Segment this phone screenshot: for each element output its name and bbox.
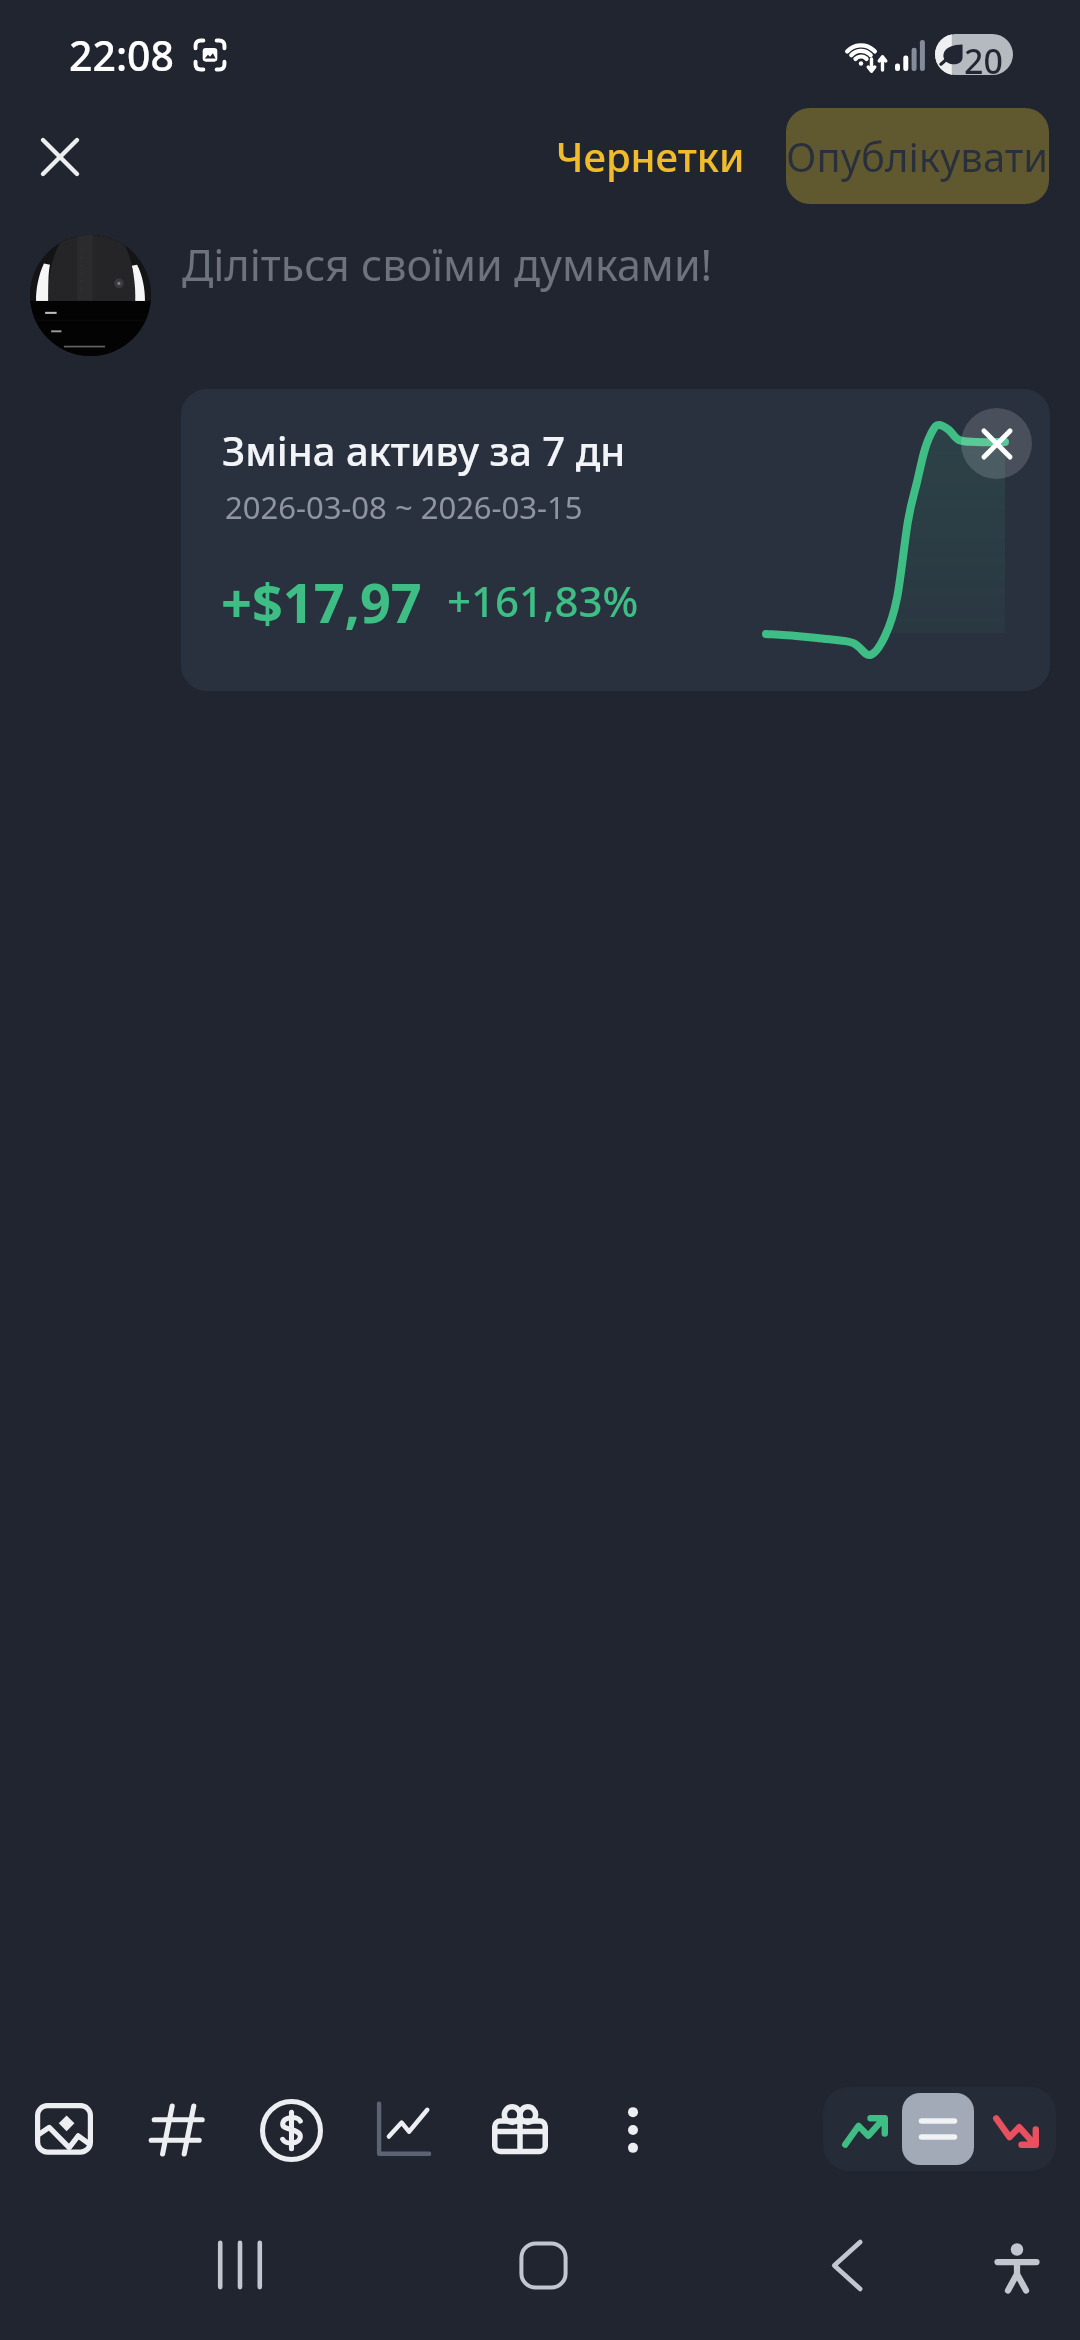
staticText: 2026-03-08 ~ 2026-03-15	[225, 486, 583, 528]
button[interactable]: Add image	[20, 2086, 108, 2174]
button[interactable]: Чернетки	[540, 115, 761, 197]
button[interactable]: Add chart	[359, 2086, 447, 2174]
button[interactable]: Home	[493, 2215, 593, 2315]
button[interactable]: Bullish	[829, 2095, 901, 2167]
button[interactable]: Neutral	[902, 2093, 974, 2165]
button[interactable]: Зміна активу за 7 дн	[181, 389, 1050, 691]
button[interactable]: Accessibility	[967, 2218, 1067, 2318]
button[interactable]: Profile picture	[30, 235, 151, 356]
button[interactable]: Recents	[190, 2215, 290, 2315]
button[interactable]: Send gift	[476, 2086, 564, 2174]
button[interactable]: Опублікувати	[786, 108, 1049, 204]
button[interactable]: Add hashtag	[133, 2086, 221, 2174]
button[interactable]: Back	[796, 2215, 896, 2315]
button[interactable]: Remove attachment	[961, 408, 1032, 479]
button[interactable]: Add ticker	[247, 2086, 335, 2174]
staticText: Опублікувати	[786, 129, 1049, 183]
staticText: 22:08	[69, 27, 174, 83]
staticText: +161,83%	[447, 572, 639, 629]
staticText: Зміна активу за 7 дн	[222, 423, 626, 477]
staticText: 20	[964, 38, 1003, 75]
staticText: Чернетки	[556, 129, 745, 183]
button[interactable]: More options	[589, 2086, 677, 2174]
button[interactable]: Bearish	[980, 2095, 1052, 2167]
staticText: Діліться своїми думками!	[182, 235, 713, 294]
staticText: +$17,97	[221, 565, 422, 639]
button[interactable]: Close	[16, 113, 104, 201]
